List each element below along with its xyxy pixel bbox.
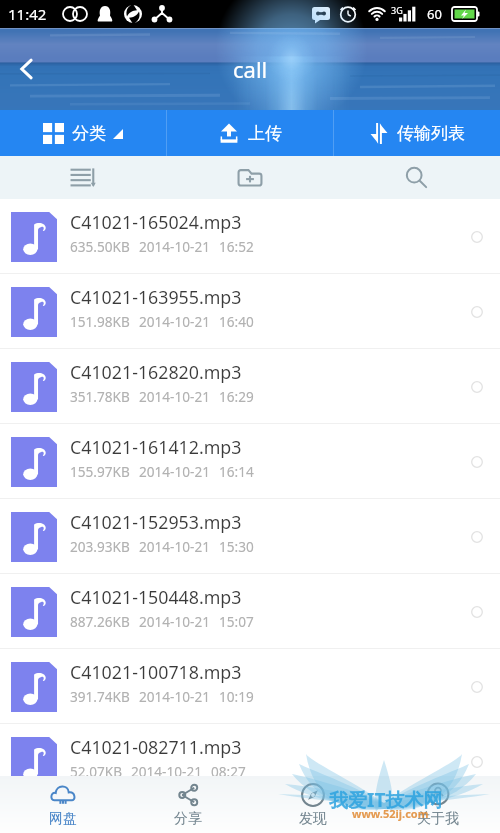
- button[interactable]: C41021-152953.mp3: [0, 499, 500, 574]
- staticText: 2014-10-21: [131, 762, 202, 781]
- staticText: 3G: [391, 4, 403, 16]
- staticText: 2014-10-21: [139, 537, 210, 556]
- staticText: 网盘: [49, 810, 77, 828]
- button[interactable]: Back: [0, 28, 54, 110]
- staticText: 分享: [174, 810, 202, 828]
- button[interactable]: C41021-162820.mp3: [0, 349, 500, 424]
- staticText: 635.50KB: [70, 237, 130, 256]
- staticText: 16:14: [219, 462, 254, 481]
- button[interactable]: Select file: [464, 599, 490, 625]
- staticText: C41021-163955.mp3: [70, 285, 242, 309]
- staticText: C41021-150448.mp3: [70, 585, 242, 609]
- staticText: C41021-082711.mp3: [70, 735, 242, 759]
- staticText: C41021-152953.mp3: [70, 510, 242, 534]
- staticText: 我爱IT技术网: [329, 787, 443, 813]
- staticText: 2014-10-21: [139, 387, 210, 406]
- staticText: 15:07: [219, 612, 254, 631]
- staticText: 16:29: [219, 387, 254, 406]
- button[interactable]: Search: [333, 156, 500, 199]
- button[interactable]: 分类: [0, 110, 166, 156]
- staticText: 11:42: [8, 4, 47, 24]
- staticText: 2014-10-21: [139, 687, 210, 706]
- button[interactable]: Select file: [464, 299, 490, 325]
- staticText: www.52ij.com: [352, 806, 429, 821]
- button[interactable]: New folder: [166, 156, 333, 199]
- button[interactable]: C41021-082711.mp3: [0, 724, 500, 799]
- staticText: 15:30: [219, 537, 254, 556]
- staticText: 887.26KB: [70, 612, 130, 631]
- staticText: 关于我: [417, 810, 459, 828]
- staticText: 151.98KB: [70, 312, 130, 331]
- staticText: 391.74KB: [70, 687, 130, 706]
- staticText: 上传: [248, 123, 282, 144]
- staticText: 传输列表: [397, 123, 465, 144]
- staticText: 351.78KB: [70, 387, 130, 406]
- staticText: 16:40: [219, 312, 254, 331]
- staticText: 60: [427, 5, 442, 23]
- button[interactable]: Select file: [464, 674, 490, 700]
- staticText: 2014-10-21: [139, 612, 210, 631]
- button[interactable]: Sort: [0, 156, 166, 199]
- button[interactable]: 传输列表: [334, 110, 500, 156]
- staticText: 16:52: [219, 237, 254, 256]
- staticText: 2014-10-21: [139, 312, 210, 331]
- button[interactable]: C41021-150448.mp3: [0, 574, 500, 649]
- button[interactable]: 网盘: [0, 776, 125, 833]
- button[interactable]: 关于我: [375, 776, 500, 833]
- button[interactable]: Select file: [464, 224, 490, 250]
- staticText: 发现: [299, 810, 327, 828]
- staticText: 155.97KB: [70, 462, 130, 481]
- staticText: 52.07KB: [70, 762, 122, 781]
- staticText: 203.93KB: [70, 537, 130, 556]
- button[interactable]: Select file: [464, 524, 490, 550]
- staticText: C41021-162820.mp3: [70, 360, 242, 384]
- button[interactable]: C41021-100718.mp3: [0, 649, 500, 724]
- button[interactable]: Select file: [464, 749, 490, 775]
- button[interactable]: C41021-165024.mp3: [0, 199, 500, 274]
- staticText: 分类: [72, 123, 106, 144]
- staticText: call: [233, 54, 268, 84]
- staticText: 2014-10-21: [139, 237, 210, 256]
- staticText: 08:27: [211, 762, 246, 781]
- staticText: C41021-161412.mp3: [70, 435, 242, 459]
- staticText: 10:19: [219, 687, 254, 706]
- button[interactable]: C41021-163955.mp3: [0, 274, 500, 349]
- button[interactable]: 上传: [167, 110, 333, 156]
- button[interactable]: Select file: [464, 449, 490, 475]
- staticText: C41021-100718.mp3: [70, 660, 242, 684]
- button[interactable]: 分享: [125, 776, 250, 833]
- button[interactable]: C41021-161412.mp3: [0, 424, 500, 499]
- staticText: C41021-165024.mp3: [70, 210, 242, 234]
- button[interactable]: 发现: [250, 776, 375, 833]
- button[interactable]: Select file: [464, 374, 490, 400]
- staticText: 2014-10-21: [139, 462, 210, 481]
